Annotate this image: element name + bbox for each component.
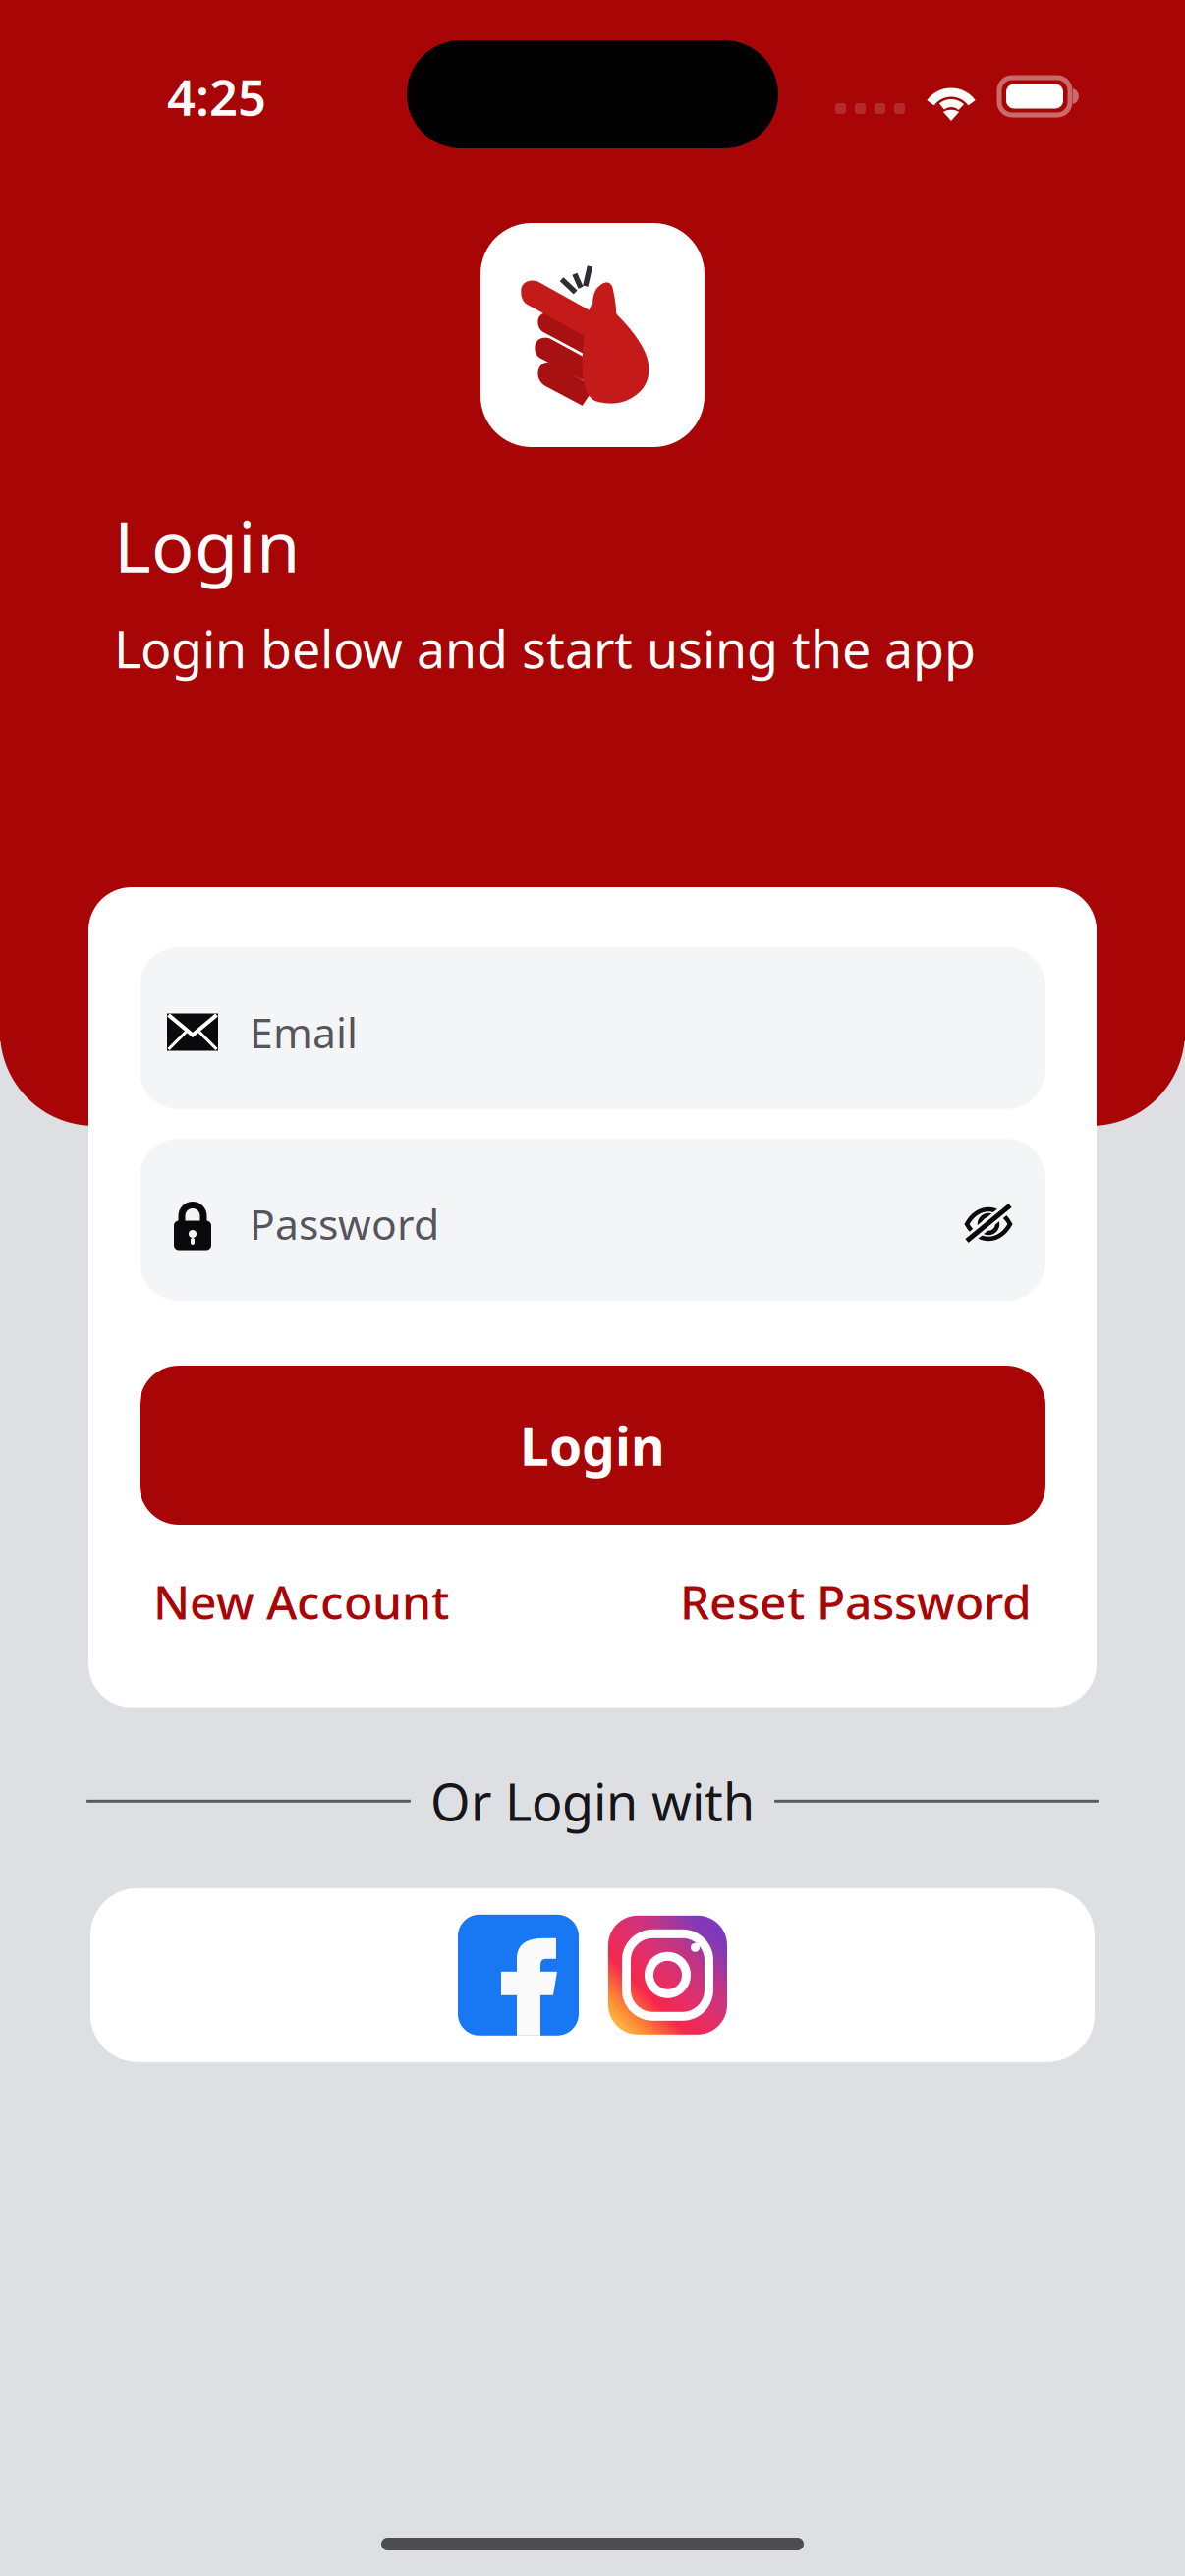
staticText: Login	[114, 498, 300, 592]
staticText: Reset Password	[680, 1570, 1032, 1633]
staticText: Login	[520, 1410, 665, 1480]
button[interactable]: New Account	[153, 1570, 449, 1633]
button[interactable]: Reset Password	[680, 1570, 1032, 1633]
button[interactable]: Show password	[961, 1194, 1018, 1254]
staticText: Password	[250, 1196, 439, 1252]
button[interactable]: Continue with Instagram	[608, 1916, 727, 2034]
button[interactable]: Login	[140, 1366, 1045, 1525]
staticText: Login below and start using the app	[114, 615, 976, 683]
staticText: 4:25	[167, 63, 266, 129]
staticText: New Account	[153, 1570, 449, 1633]
staticText: Email	[250, 1004, 358, 1060]
staticText: Or Login with	[430, 1767, 755, 1835]
button[interactable]: Continue with Facebook	[458, 1915, 579, 2035]
